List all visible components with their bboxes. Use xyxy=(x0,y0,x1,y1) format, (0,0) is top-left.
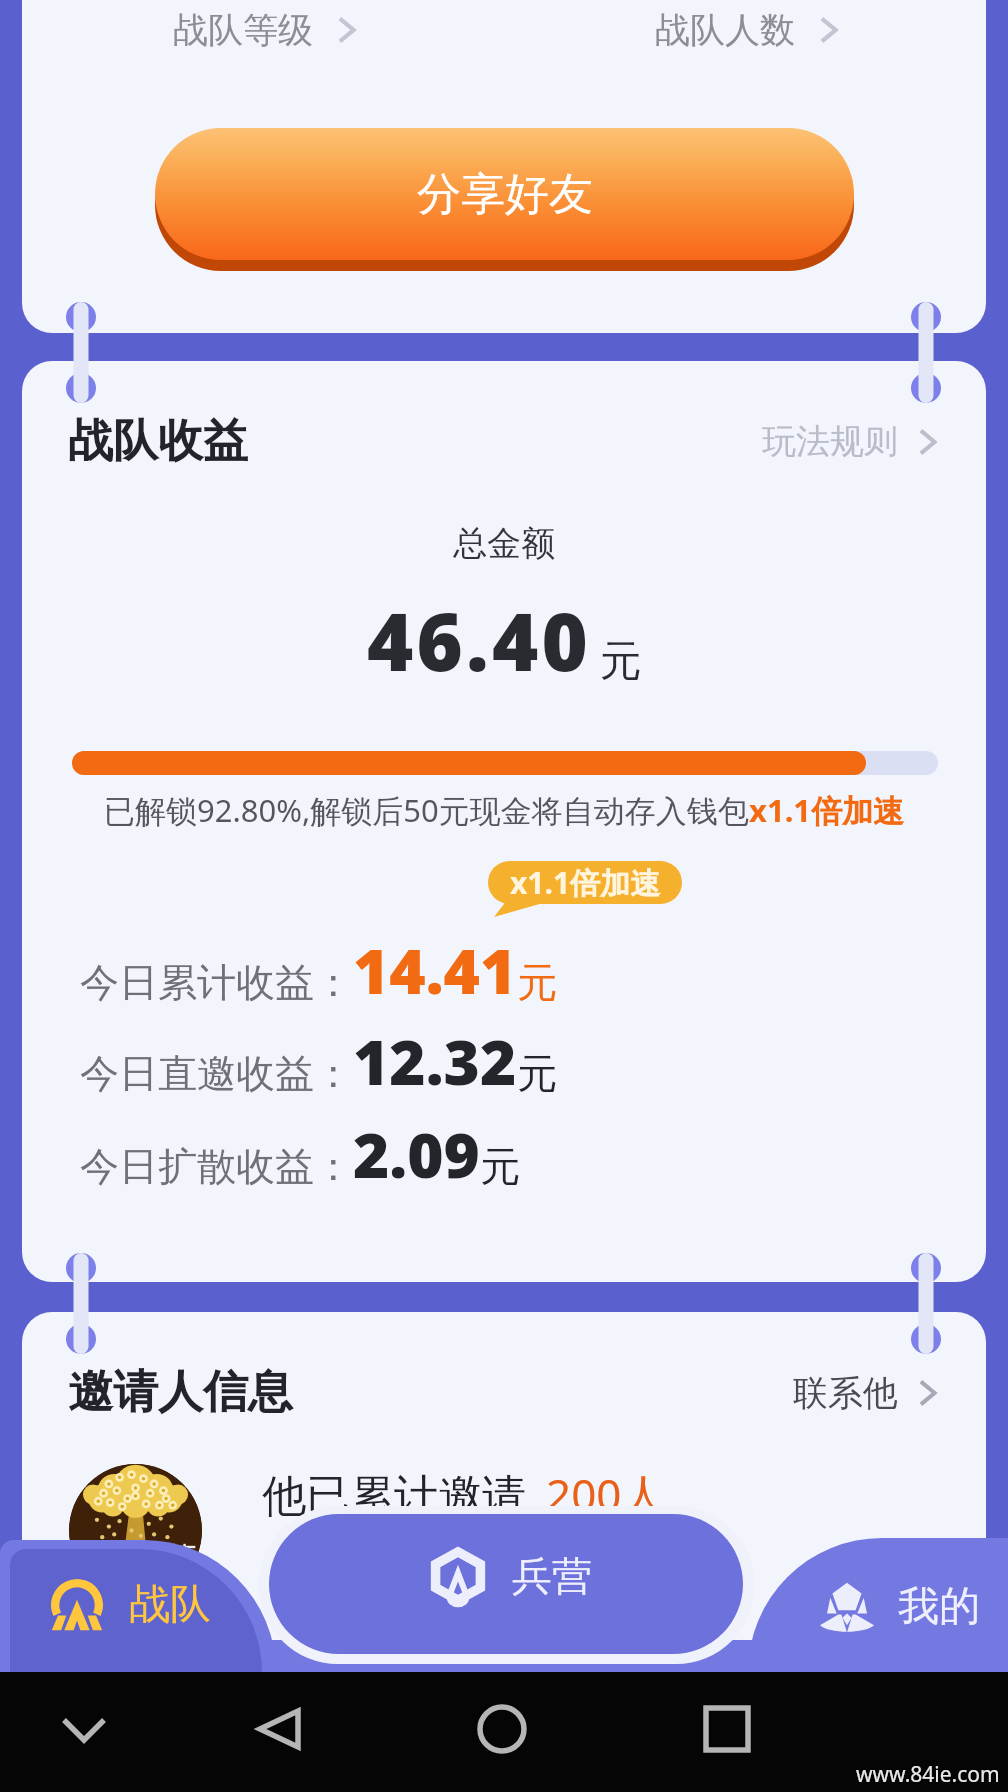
staticText: 战队 xyxy=(129,1579,211,1631)
button[interactable]: 兵营 xyxy=(269,1514,743,1654)
button[interactable]: 战队等级 xyxy=(173,8,365,52)
staticText: x1.1倍加速 xyxy=(510,862,661,903)
staticText: 今日直邀收益： xyxy=(80,1049,353,1098)
button[interactable]: 联系他 xyxy=(793,1371,946,1415)
staticText: 他已累计邀请 xyxy=(262,1469,526,1524)
staticText: 今日累计收益： xyxy=(80,958,353,1007)
staticText: 战队收益 xyxy=(68,413,248,470)
staticText: 战队人数 xyxy=(655,8,795,52)
staticText: 元 xyxy=(600,635,642,688)
button[interactable]: 分享好友 xyxy=(155,128,854,271)
button[interactable]: 战队 xyxy=(10,1549,262,1672)
button[interactable]: x1.1倍加速 xyxy=(488,861,682,917)
staticText: 14.41 xyxy=(353,928,517,1012)
staticText: 元 xyxy=(480,1141,520,1191)
staticText: 玩法规则 xyxy=(762,420,898,463)
staticText: 邀请人信息 xyxy=(68,1364,293,1421)
staticText: 46.40 xyxy=(367,587,592,695)
staticText: 12.32 xyxy=(353,1019,517,1103)
staticText: x1.1倍加速 xyxy=(749,789,905,831)
staticText: www.84ie.com xyxy=(856,1760,1000,1789)
staticText: 战队等级 xyxy=(173,8,313,52)
staticText: 兵营 xyxy=(512,1551,592,1601)
staticText: 分享好友 xyxy=(417,167,593,222)
staticText: 总金额 xyxy=(453,522,555,565)
button[interactable]: 战队人数 xyxy=(655,8,847,52)
staticText: 200人 xyxy=(546,1464,666,1524)
staticText: 今日扩散收益： xyxy=(80,1142,353,1191)
staticText: 2.09 xyxy=(353,1112,480,1196)
staticText: 已解锁92.80%,解锁后50元现金将自动存入钱包 xyxy=(104,789,749,831)
button[interactable]: 玩法规则 xyxy=(762,420,946,463)
staticText: 我的 xyxy=(898,1581,980,1633)
staticText: 元 xyxy=(517,957,557,1007)
button[interactable]: 我的 xyxy=(748,1538,1008,1672)
staticText: 元 xyxy=(517,1048,557,1098)
staticText: 联系他 xyxy=(793,1371,898,1415)
